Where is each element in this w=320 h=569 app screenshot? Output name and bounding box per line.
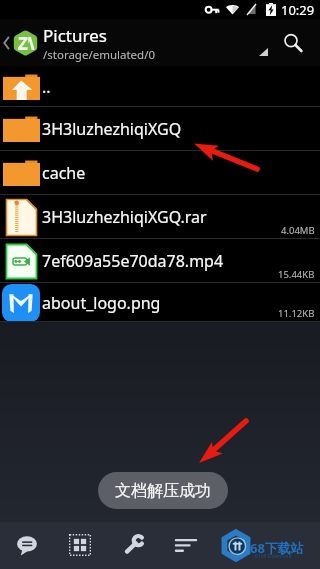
- button[interactable]: Select all: [60, 525, 100, 565]
- button[interactable]: 7ef609a55e70da78.mp4: [0, 239, 320, 283]
- staticText: about_logo.png: [42, 292, 161, 314]
- staticText: 4.04MB: [281, 224, 315, 237]
- staticText: 11.12KB: [278, 307, 315, 320]
- staticText: 3H3luzhezhiqiXGQ: [42, 118, 182, 140]
- staticText: 15.44KB: [278, 268, 315, 281]
- staticText: 68下载站: [250, 539, 304, 557]
- button[interactable]: Tools: [114, 525, 154, 565]
- button[interactable]: 3H3luzhezhiqiXGQ: [0, 107, 320, 151]
- staticText: Pictures: [43, 24, 107, 47]
- button[interactable]: More: [223, 525, 263, 565]
- button[interactable]: 3H3luzhezhiqiXGQ.rar: [0, 195, 320, 239]
- button[interactable]: about_logo.png: [0, 283, 320, 322]
- button[interactable]: ..: [0, 66, 320, 107]
- button[interactable]: cache: [0, 151, 320, 195]
- button[interactable]: Search: [276, 26, 310, 60]
- staticText: ..: [42, 76, 51, 98]
- staticText: 10:29: [281, 1, 315, 19]
- staticText: /storage/emulated/0: [43, 47, 156, 63]
- staticText: cache: [42, 162, 86, 184]
- staticText: 3H3luzhezhiqiXGQ.rar: [42, 206, 207, 228]
- staticText: 6168 Download: [255, 553, 292, 560]
- button[interactable]: Pictures: [0, 19, 320, 66]
- staticText: 7ef609a55e70da78.mp4: [42, 250, 224, 272]
- button[interactable]: Comments: [7, 525, 47, 565]
- button[interactable]: 文档解压成功: [98, 472, 228, 509]
- staticText: 文档解压成功: [115, 481, 211, 501]
- button[interactable]: Sort: [166, 525, 206, 565]
